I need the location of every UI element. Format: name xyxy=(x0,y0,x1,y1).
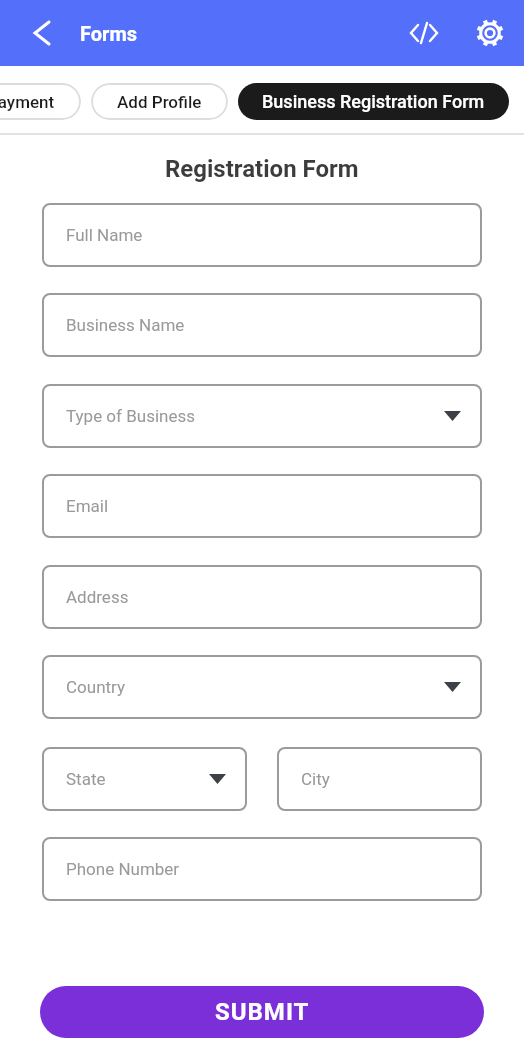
button[interactable] xyxy=(28,19,56,47)
staticText: Payment xyxy=(0,92,55,112)
staticText: Phone Number xyxy=(66,859,180,879)
staticText: State xyxy=(66,769,106,789)
button[interactable]: Type of Business xyxy=(42,384,482,448)
staticText: Country xyxy=(66,677,126,697)
staticText: Forms xyxy=(80,22,137,45)
button[interactable]: Phone Number xyxy=(42,837,482,901)
button[interactable]: Add Profile xyxy=(91,83,228,120)
staticText: City xyxy=(301,769,330,789)
button[interactable] xyxy=(474,17,506,49)
button[interactable]: Address xyxy=(42,565,482,629)
button[interactable]: SUBMIT xyxy=(40,986,484,1038)
button[interactable]: Email xyxy=(42,474,482,538)
staticText: Full Name xyxy=(66,225,143,245)
button[interactable]: State xyxy=(42,747,247,811)
staticText: Address xyxy=(66,587,129,607)
staticText: Add Profile xyxy=(117,92,202,112)
button[interactable]: Business Registration Form xyxy=(238,83,509,120)
button[interactable]: Full Name xyxy=(42,203,482,267)
button[interactable]: Payment xyxy=(0,83,81,120)
staticText: Type of Business xyxy=(66,406,196,426)
button[interactable] xyxy=(408,17,440,49)
button[interactable]: City xyxy=(277,747,482,811)
staticText: Registration Form xyxy=(165,155,359,183)
staticText: Email xyxy=(66,496,109,516)
button[interactable]: Business Name xyxy=(42,293,482,357)
button[interactable]: Country xyxy=(42,655,482,719)
staticText: SUBMIT xyxy=(215,998,310,1026)
staticText: Business Registration Form xyxy=(262,91,485,112)
staticText: Business Name xyxy=(66,315,185,335)
